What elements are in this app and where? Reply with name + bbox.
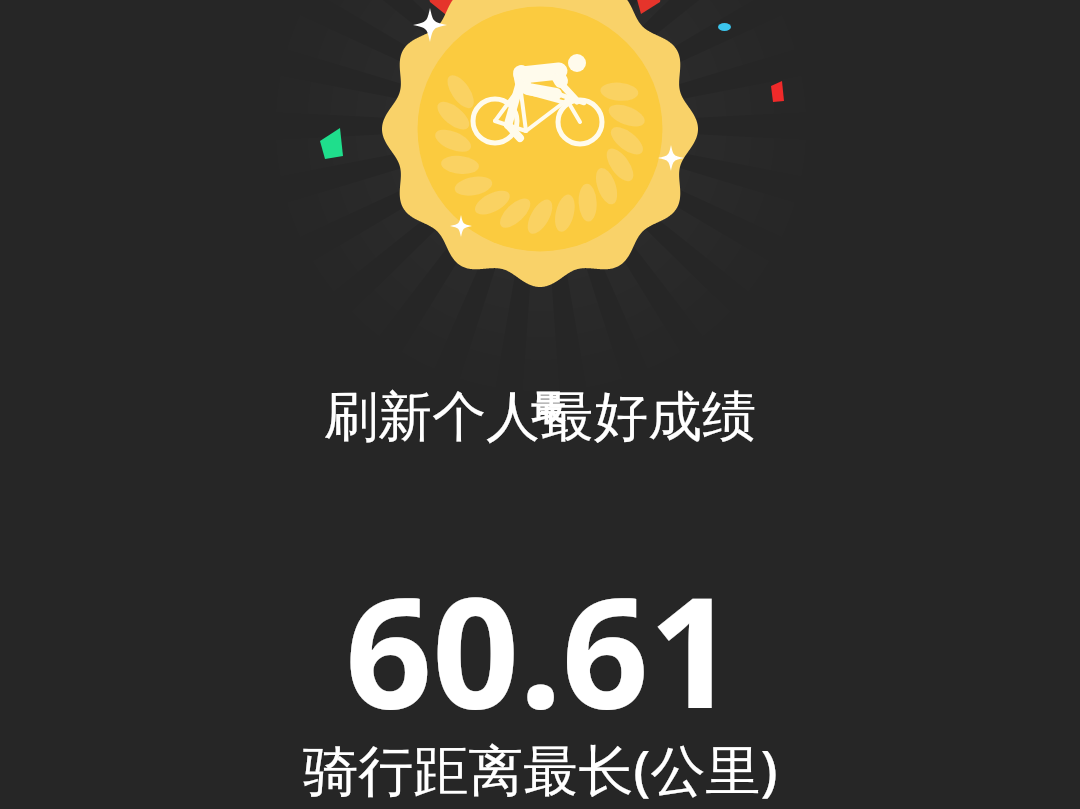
staticText: 刷新个人最好成绩 [324,383,756,451]
staticText: 最 [531,387,565,430]
staticText: 60.61 [345,546,736,753]
staticText: 骑行距离最长(公里) [303,731,778,806]
button[interactable]: 骑行成就奖章 [382,0,698,287]
